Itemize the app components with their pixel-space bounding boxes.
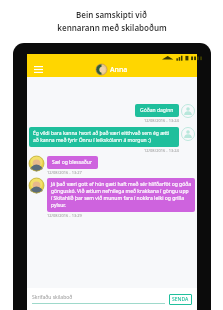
staticText: SENDA [172, 296, 189, 303]
button[interactable]: Ég vildi bara kanna hvort að það væri ei… [29, 127, 179, 147]
staticText: Sæl og blessaður [52, 159, 93, 166]
button[interactable]: Menu [31, 62, 45, 76]
staticText: Anna [110, 65, 128, 75]
button[interactable]: Já það væri gott ef hún gæti haft með sé… [47, 178, 195, 212]
button[interactable]: Góðan daginn [135, 104, 179, 117]
button[interactable]: SENDA [169, 294, 192, 305]
staticText: kennarann með skilaboðum [57, 22, 167, 33]
staticText: Bein samskipti við [76, 9, 147, 20]
staticText: Já það væri gott ef hún gæti haft með sé… [51, 181, 191, 209]
staticText: Skrifaðu skilaboð [32, 294, 73, 301]
staticText: Góðan daginn [140, 107, 174, 114]
staticText: Ég vildi bara kanna hvort að það væri ei… [33, 130, 175, 144]
staticText: 12/08/2016 - 13:27 [47, 170, 82, 175]
staticText: 12/08/2016 - 13:24 [144, 118, 179, 123]
staticText: 12/08/2016 - 13:29 [47, 213, 82, 218]
button[interactable]: Skrifaðu skilaboð [32, 294, 165, 304]
button[interactable]: Sæl og blessaður [47, 156, 98, 169]
staticText: 12/08/2016 - 13:24 [144, 148, 179, 153]
